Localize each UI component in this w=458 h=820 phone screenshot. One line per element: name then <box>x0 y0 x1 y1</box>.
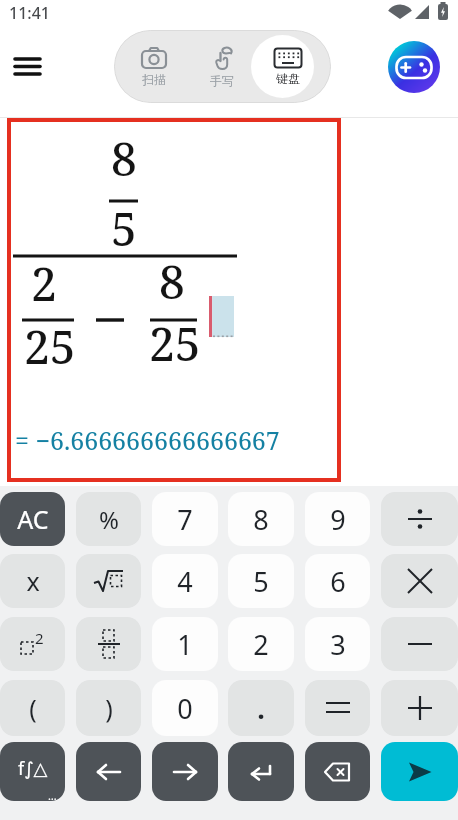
staticText: % <box>99 503 119 536</box>
staticText: 8 <box>159 250 185 313</box>
staticText: 5 <box>253 563 269 600</box>
button[interactable] <box>381 492 458 546</box>
staticText: 键盘 <box>276 71 300 86</box>
button[interactable] <box>388 41 440 93</box>
staticText: f∫△ <box>18 756 48 781</box>
button[interactable] <box>381 554 458 608</box>
button[interactable] <box>152 742 218 801</box>
staticText: 25 <box>149 312 201 375</box>
button[interactable]: 2 <box>228 617 294 671</box>
button[interactable] <box>305 680 370 736</box>
button[interactable]: f∫△ <box>0 742 65 801</box>
staticText: … <box>48 788 57 801</box>
button[interactable]: 手写 <box>188 30 256 103</box>
staticText: 3 <box>330 626 346 663</box>
button[interactable]: . <box>228 680 294 736</box>
staticText: ( <box>29 691 37 725</box>
staticText: 11:41 <box>9 2 50 24</box>
staticText: 手写 <box>210 73 234 88</box>
button[interactable]: ) <box>76 680 141 736</box>
button[interactable]: 5 <box>228 554 294 608</box>
button[interactable]: ( <box>0 680 65 736</box>
button[interactable] <box>381 742 458 801</box>
staticText: 2 <box>253 626 269 663</box>
staticText: 25 <box>24 315 76 378</box>
staticText: 5 <box>111 197 137 260</box>
staticText: 9 <box>330 501 346 538</box>
staticText: = −6.666666666666667 <box>15 423 280 457</box>
staticText: 0 <box>177 690 193 727</box>
staticText: 2 <box>35 628 44 648</box>
button[interactable]: x <box>0 554 65 608</box>
staticText: 7 <box>177 501 193 538</box>
button[interactable]: 4 <box>152 554 218 608</box>
button[interactable] <box>228 742 294 801</box>
button[interactable]: 扫描 <box>120 30 188 103</box>
staticText: x <box>26 564 40 598</box>
button[interactable] <box>76 554 141 608</box>
staticText: 4 <box>177 563 193 600</box>
button[interactable] <box>305 742 370 801</box>
staticText: 2 <box>31 252 57 315</box>
staticText: AC <box>17 502 49 536</box>
staticText: 1 <box>177 626 193 663</box>
button[interactable]: 6 <box>305 554 370 608</box>
button[interactable]: 1 <box>152 617 218 671</box>
staticText: 6 <box>330 563 346 600</box>
staticText: 扫描 <box>142 72 166 87</box>
button[interactable]: 9 <box>305 492 370 546</box>
button[interactable]: 0 <box>152 680 218 736</box>
staticText: . <box>257 690 265 727</box>
button[interactable]: 2 <box>0 617 65 671</box>
button[interactable] <box>381 617 458 671</box>
button[interactable]: 8 <box>228 492 294 546</box>
button[interactable]: 7 <box>152 492 218 546</box>
button[interactable]: 3 <box>305 617 370 671</box>
button[interactable]: 键盘 <box>254 30 322 103</box>
button[interactable] <box>76 742 141 801</box>
button[interactable] <box>381 680 458 736</box>
staticText: 8 <box>253 501 269 538</box>
button[interactable] <box>8 48 46 86</box>
button[interactable]: % <box>76 492 141 546</box>
staticText: ) <box>105 691 113 725</box>
button[interactable]: AC <box>0 492 65 546</box>
staticText: 8 <box>111 127 137 190</box>
button[interactable] <box>76 617 141 671</box>
